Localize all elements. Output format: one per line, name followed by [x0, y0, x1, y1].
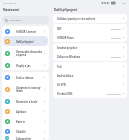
staticText: Zapnuto: [111, 27, 121, 30]
staticText: NFC: [57, 27, 111, 30]
button[interactable]: Úložiště: [3, 126, 48, 136]
button[interactable]: Biometrie a heslo: [3, 96, 48, 106]
staticText: Vyhledávání: [9, 19, 21, 22]
staticText: Tisk: [57, 65, 122, 68]
staticText: Biometrie a heslo: [16, 100, 38, 103]
staticText: Síť VPN: [57, 83, 122, 86]
button[interactable]: HONOR Connect: [3, 26, 48, 36]
staticText: Zapnuto: [111, 55, 121, 58]
button[interactable]: Zvuk a vibrace: [3, 72, 48, 82]
button[interactable]: Snadná projekce: [53, 43, 127, 52]
staticText: Privátní DNS: [57, 92, 106, 95]
button[interactable]: Aplikace: [3, 106, 48, 116]
staticText: HONOR Connect: [16, 30, 37, 33]
staticText: Snadná projekce: [57, 46, 122, 49]
button[interactable]: Síť VPN: [53, 80, 127, 89]
button[interactable]: Vyhledávání: [2, 16, 49, 24]
staticText: Nastavení: [3, 8, 20, 12]
staticText: Zvuk a vibrace: [16, 76, 34, 79]
staticText: Další připojení: [16, 40, 34, 43]
staticText: Android Auto: [57, 74, 122, 77]
staticText: Domovská obrazovka a tapeta: [16, 50, 43, 57]
staticText: Úložiště: [16, 130, 26, 133]
staticText: Zabezpečení: [16, 137, 32, 140]
button[interactable]: Baterie: [3, 116, 48, 126]
button[interactable]: Android Auto: [53, 71, 127, 80]
button[interactable]: Domovská obrazovka a tapeta: [3, 46, 48, 60]
staticText: Aplikace: [16, 110, 27, 113]
staticText: Automaticky: [106, 92, 121, 95]
button[interactable]: Tisk: [53, 62, 127, 71]
button[interactable]: Další připojení: [3, 36, 48, 46]
staticText: HONOR Share: [57, 36, 111, 39]
staticText: 13:24 út 5. říj: [3, 2, 16, 5]
staticText: Oznámení a stavový řádek: [16, 86, 41, 93]
button[interactable]: Zabezpečení: [3, 136, 48, 140]
staticText: Baterie: [16, 120, 25, 123]
button[interactable]: Privátní DNS: [53, 89, 127, 98]
button[interactable]: Oznámení a stavový řádek: [3, 82, 48, 96]
staticText: Odkaz na Windows: [57, 55, 111, 58]
button[interactable]: Ovládací panel pro více zařízení: [53, 14, 127, 23]
button[interactable]: HONOR Share: [53, 33, 127, 42]
staticText: Zapnuto: [111, 36, 121, 39]
button[interactable]: Displej a jas: [3, 60, 48, 70]
staticText: Displej a jas: [16, 64, 31, 67]
button[interactable]: Odkaz na Windows: [53, 52, 127, 61]
staticText: Další připojení: [54, 8, 77, 12]
button[interactable]: NFC: [53, 24, 127, 33]
staticText: 84%: [122, 2, 127, 5]
staticText: Ovládací panel pro více zařízení: [57, 17, 122, 20]
